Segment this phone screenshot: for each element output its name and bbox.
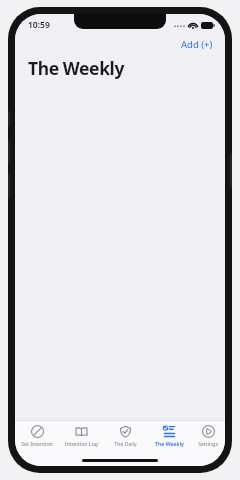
button[interactable]: Settings (191, 421, 225, 457)
button[interactable]: Intention Log (59, 421, 103, 457)
other: The Daily (119, 425, 132, 438)
button[interactable]: Set Intention (15, 421, 59, 457)
staticText: Settings (198, 440, 218, 447)
other: The Weekly (163, 425, 176, 438)
button[interactable]: The Daily (103, 421, 147, 457)
other: Settings (202, 425, 215, 438)
button[interactable]: The Weekly (147, 421, 191, 457)
staticText: The Weekly (155, 440, 184, 447)
staticText: 10:59 (28, 19, 50, 31)
staticText: Intention Log (65, 440, 98, 447)
staticText: Set Intention (21, 440, 53, 447)
staticText: The Daily (114, 440, 137, 447)
button[interactable]: Add (+) (177, 36, 217, 53)
other: Set Intention (31, 425, 44, 438)
staticText: Add (+) (181, 38, 213, 51)
staticText: The Weekly (28, 56, 124, 80)
other: Intention Log (75, 425, 88, 438)
